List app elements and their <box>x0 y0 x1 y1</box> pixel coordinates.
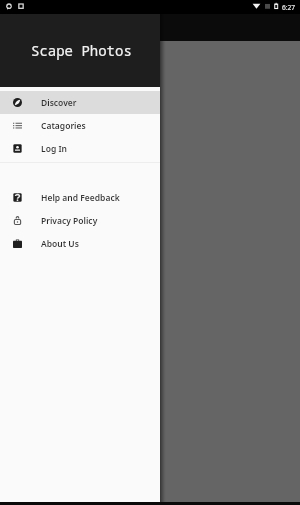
button[interactable]: Help and Feedback <box>0 186 160 209</box>
staticText: Discover <box>41 97 77 109</box>
button[interactable]: Close navigation drawer <box>0 0 300 505</box>
staticText: Help and Feedback <box>41 192 120 204</box>
staticText: Privacy Policy <box>41 215 98 227</box>
button[interactable]: Privacy Policy <box>0 209 160 232</box>
staticText: Log In <box>41 143 67 155</box>
button[interactable]: Scape Photos <box>0 0 160 87</box>
button[interactable]: Log In <box>0 137 160 160</box>
button[interactable]: About Us <box>0 232 160 255</box>
button[interactable]: Discover <box>0 91 160 114</box>
staticText: Catagories <box>41 120 86 132</box>
staticText: Scape Photos <box>31 41 132 60</box>
staticText: 6:27 <box>282 3 296 12</box>
staticText: About Us <box>41 238 79 250</box>
button[interactable]: Catagories <box>0 114 160 137</box>
other: Status bar <box>0 0 300 14</box>
